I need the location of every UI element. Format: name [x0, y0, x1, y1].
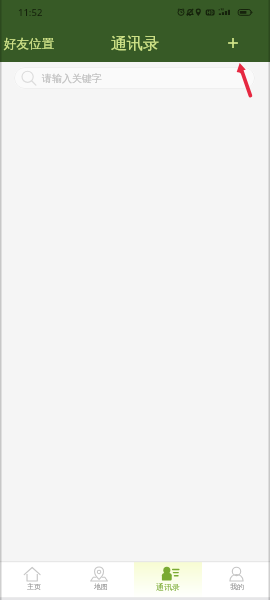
- button[interactable]: 我的: [202, 562, 270, 600]
- staticText: 请输入关键字: [42, 72, 102, 85]
- button[interactable]: 请输入关键字: [14, 67, 255, 89]
- staticText: 我的: [230, 582, 244, 591]
- button[interactable]: 主页: [0, 562, 67, 600]
- button[interactable]: 地图: [67, 562, 134, 600]
- button[interactable]: Add contact: [225, 35, 241, 51]
- button[interactable]: 通讯录: [134, 562, 202, 600]
- staticText: 通讯录: [156, 582, 180, 592]
- button[interactable]: 好友位置: [4, 36, 54, 52]
- staticText: 通讯录: [111, 34, 159, 54]
- staticText: 11:52: [18, 6, 43, 19]
- staticText: 主页: [27, 582, 41, 591]
- staticText: 地图: [94, 582, 108, 591]
